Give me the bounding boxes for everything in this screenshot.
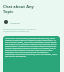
button[interactable]: Assistant [4, 20, 21, 24]
staticText: Lorem ipsum dolor sit amet, consectetur … [5, 37, 58, 72]
staticText: Assistant [10, 21, 21, 24]
staticText: Lorem ipsum dolor sit amet consectetur a… [3, 27, 36, 33]
staticText: Chat about Any Topic [3, 4, 34, 14]
